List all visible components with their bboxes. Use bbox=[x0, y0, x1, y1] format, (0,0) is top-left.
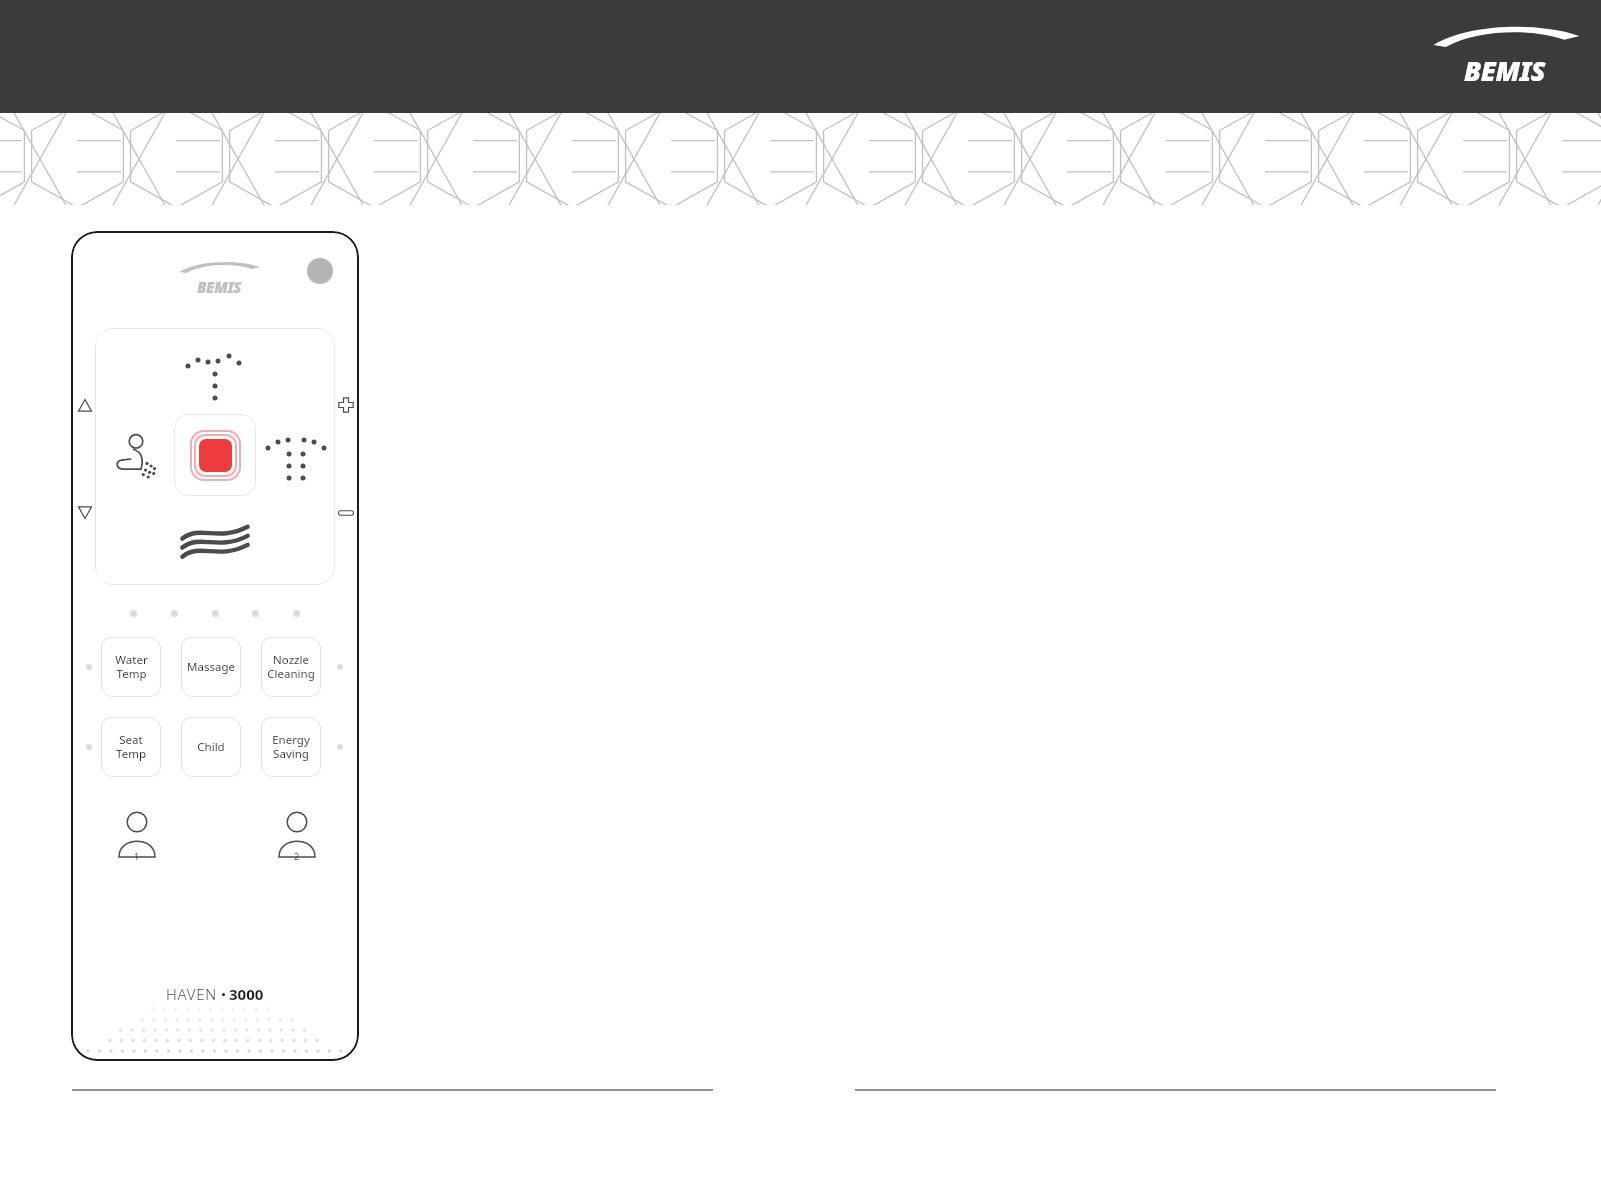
other: Bemis logo bbox=[1429, 21, 1581, 89]
staticText: Nozzle Cleaning bbox=[267, 652, 315, 682]
staticText: BEMIS bbox=[197, 277, 242, 297]
staticText: Seat Temp bbox=[116, 732, 146, 762]
button[interactable]: Water Temp bbox=[101, 637, 161, 697]
button[interactable]: Massage bbox=[181, 637, 241, 697]
staticText: BEMIS bbox=[1464, 52, 1546, 89]
button[interactable]: Wide wash bbox=[265, 429, 327, 483]
button[interactable]: User preset 1 bbox=[115, 808, 159, 862]
button[interactable]: Dryer bbox=[181, 518, 249, 560]
staticText: Water Temp bbox=[115, 652, 148, 682]
button[interactable]: Nozzle Cleaning bbox=[261, 637, 321, 697]
staticText: 1 bbox=[134, 850, 140, 862]
staticText: HAVEN bbox=[166, 984, 217, 1004]
staticText: 2 bbox=[294, 850, 300, 862]
button[interactable]: User preset 2 bbox=[275, 808, 319, 862]
button[interactable]: Stop bbox=[174, 414, 256, 496]
button[interactable]: Rear wash bbox=[183, 348, 247, 398]
button[interactable]: Energy Saving bbox=[261, 717, 321, 777]
staticText: Energy Saving bbox=[272, 732, 310, 762]
staticText: Child bbox=[197, 739, 225, 755]
button[interactable]: Minus bbox=[335, 502, 357, 524]
staticText: Massage bbox=[187, 659, 235, 675]
button[interactable]: Plus bbox=[335, 394, 357, 416]
button[interactable]: Increase bbox=[74, 395, 96, 417]
button[interactable]: Front wash bbox=[107, 428, 165, 486]
staticText: 3000 bbox=[229, 984, 264, 1004]
button[interactable]: Child bbox=[181, 717, 241, 777]
button[interactable]: Seat Temp bbox=[101, 717, 161, 777]
button[interactable]: Decrease bbox=[74, 501, 96, 523]
